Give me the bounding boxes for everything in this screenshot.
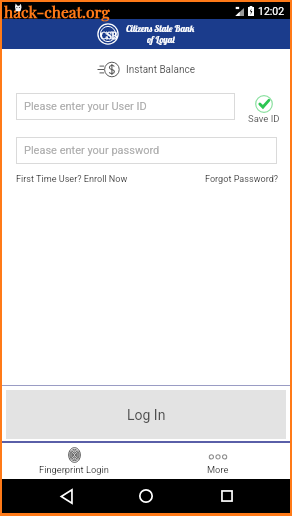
button[interactable]: Log In — [6, 390, 286, 439]
button[interactable]: Back — [49, 479, 83, 513]
button[interactable]: First Time User? Enroll Now — [16, 172, 128, 187]
button[interactable]: Fingerprint Login — [36, 444, 112, 478]
staticText: Instant Balance — [126, 64, 195, 76]
button[interactable]: Home — [129, 479, 163, 513]
staticText: of Loyal — [147, 34, 175, 45]
staticText: hack-cheat.org — [4, 1, 110, 22]
button[interactable]: Please enter your password — [16, 137, 277, 164]
staticText: Forgot Password? — [205, 174, 279, 185]
button[interactable]: Save ID — [248, 93, 280, 124]
staticText: Please enter your password — [24, 144, 160, 157]
staticText: Citizens State Bank — [126, 23, 195, 34]
button[interactable]: Please enter your User ID — [16, 93, 235, 120]
staticText: More — [207, 464, 229, 475]
button[interactable]: Recent apps — [210, 479, 244, 513]
staticText: Log In — [127, 407, 166, 423]
staticText: Save ID — [248, 113, 280, 124]
button[interactable]: Forgot Password? — [205, 172, 279, 187]
staticText: Fingerprint Login — [39, 464, 109, 475]
button[interactable]: Instant Balance — [93, 58, 199, 81]
staticText: 12:02 — [258, 5, 285, 17]
staticText: Please enter your User ID — [24, 100, 147, 113]
button[interactable]: More — [204, 444, 232, 478]
staticText: First Time User? Enroll Now — [16, 174, 128, 185]
staticText: CSB — [100, 28, 117, 41]
